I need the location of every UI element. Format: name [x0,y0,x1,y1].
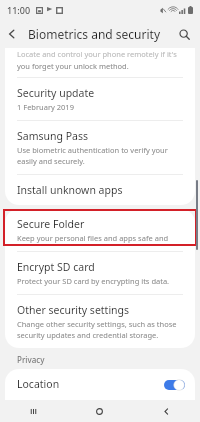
staticText: Change other security settings, such as … [17,319,183,329]
staticText: Location [17,377,60,391]
button[interactable]: Back [133,400,200,422]
button[interactable]: Other security settings [5,295,195,348]
staticText: Protect your SD card by encrypting its d… [17,276,170,286]
staticText: Privacy [17,354,45,365]
staticText: easily and securely. [17,156,85,166]
button[interactable]: Samsung Pass [5,121,195,174]
staticText: 11:00 [7,4,31,16]
staticText: you forget your unlock method. [17,61,129,71]
staticText: Secure Folder [17,217,85,231]
staticText: Samsung Pass [17,129,88,143]
button[interactable]: Location [5,369,195,400]
button[interactable]: Toggle [164,379,185,391]
staticText: Keep your personal files and apps safe a… [17,233,183,243]
button[interactable]: Encrypt SD card [5,252,195,294]
staticText: Biometrics and security [28,26,161,42]
button[interactable]: Home [66,400,133,422]
button[interactable]: Search [172,22,196,46]
staticText: Other security settings [17,303,130,317]
staticText: Use biometric authentication to verify y… [17,145,183,155]
button[interactable]: Recents [0,400,66,422]
button[interactable]: Security update [5,78,195,120]
staticText: security updates and credential storage. [17,330,159,340]
staticText: Install unknown apps [17,183,123,197]
button[interactable]: Secure Folder [5,209,195,251]
button[interactable]: Install unknown apps [5,175,195,205]
staticText: Security update [17,86,95,100]
staticText: 1 February 2019 [17,102,74,112]
staticText: Encrypt SD card [17,260,95,274]
staticText: Locate and control your phone remotely i… [17,49,183,59]
button[interactable]: Back [0,22,24,46]
